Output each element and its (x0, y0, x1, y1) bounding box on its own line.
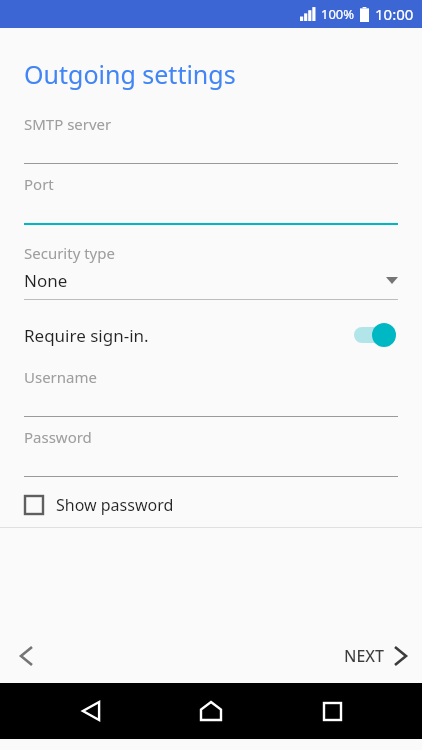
staticText: None (24, 269, 386, 292)
staticText: Security type (24, 243, 115, 263)
button[interactable]: Show password (0, 490, 422, 520)
staticText: Username (24, 367, 97, 387)
button[interactable]: Username (0, 367, 422, 417)
staticText: Outgoing settings (24, 57, 236, 91)
button[interactable]: Security type (0, 243, 422, 300)
button[interactable]: Port (0, 174, 422, 225)
staticText: Port (24, 174, 54, 194)
button[interactable]: SMTP server (0, 114, 422, 164)
staticText: 100% (321, 5, 355, 23)
button[interactable]: Password (0, 427, 422, 477)
staticText: Show password (56, 494, 174, 516)
staticText: Password (24, 427, 92, 447)
button[interactable]: Require sign-in. (0, 319, 422, 351)
staticText: NEXT (344, 645, 385, 667)
button[interactable]: Back (61, 683, 121, 739)
other: Open security type menu (386, 277, 398, 284)
staticText: Require sign-in. (24, 324, 352, 347)
button[interactable]: Home (181, 683, 241, 739)
staticText: 10:00 (375, 4, 414, 24)
button[interactable]: Recent apps (302, 683, 362, 739)
staticText: SMTP server (24, 114, 112, 134)
button[interactable]: NEXT (344, 628, 422, 683)
button[interactable]: Back (0, 628, 52, 683)
